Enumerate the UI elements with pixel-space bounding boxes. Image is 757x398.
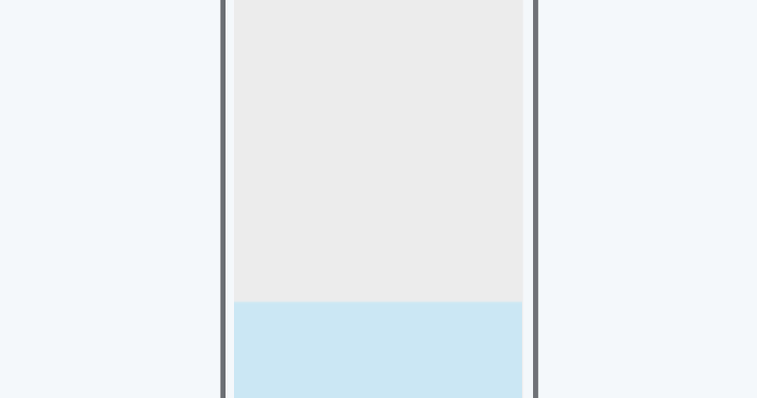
button[interactable]: Bottom panel [234,300,523,398]
